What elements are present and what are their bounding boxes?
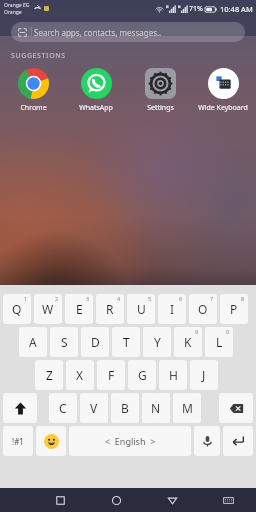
staticText: L — [216, 334, 223, 350]
staticText: F — [108, 367, 115, 383]
staticText: Chrome — [20, 103, 47, 113]
staticText: 71% — [189, 4, 203, 14]
staticText: 2 — [55, 295, 59, 302]
button[interactable]: Z — [35, 360, 63, 390]
staticText: K — [184, 334, 192, 350]
button[interactable]: E — [65, 294, 93, 324]
staticText: Orange EG — [4, 2, 30, 9]
staticText: 9 — [195, 328, 199, 335]
button[interactable]: K — [174, 327, 202, 357]
staticText: 4 — [117, 295, 121, 302]
staticText: < English > — [105, 435, 156, 447]
button[interactable]: F — [97, 360, 125, 390]
button[interactable]: T — [112, 327, 140, 357]
staticText: H — [169, 367, 178, 383]
staticText: Wide Keyboard — [198, 103, 248, 113]
staticText: 8 — [241, 295, 245, 302]
button[interactable]: L — [205, 327, 233, 357]
staticText: 1 — [24, 295, 28, 302]
button[interactable]: G — [128, 360, 156, 390]
button[interactable]: U — [127, 294, 155, 324]
button[interactable]: Back — [160, 488, 184, 512]
button[interactable]: S — [50, 327, 78, 357]
button[interactable]: WhatsApp — [66, 67, 126, 114]
staticText: E — [76, 301, 83, 317]
staticText: WhatsApp — [79, 103, 113, 113]
button[interactable]: Chrome — [3, 67, 63, 114]
button[interactable]: I — [158, 294, 186, 324]
staticText: R — [106, 301, 114, 317]
button[interactable]: !#1 — [3, 426, 33, 456]
button[interactable]: P — [220, 294, 248, 324]
button[interactable]: V — [80, 393, 108, 423]
staticText: N — [151, 400, 161, 416]
button[interactable]: < English > — [69, 426, 191, 456]
staticText: 0 — [226, 328, 230, 335]
button[interactable]: D — [81, 327, 109, 357]
staticText: !#1 — [12, 436, 24, 447]
staticText: S — [61, 334, 68, 350]
staticText: Q — [12, 301, 22, 317]
staticText: M — [182, 400, 193, 416]
staticText: 5 — [148, 295, 152, 302]
button[interactable]: R — [96, 294, 124, 324]
staticText: Settings — [147, 103, 174, 113]
staticText: O — [198, 301, 208, 317]
staticText: 6 — [179, 295, 183, 302]
staticText: 3 — [86, 295, 90, 302]
staticText: Search apps, contacts, messages.. — [34, 27, 162, 38]
button[interactable]: Backspace — [219, 393, 253, 423]
button[interactable]: H — [159, 360, 187, 390]
staticText: X — [76, 367, 84, 383]
staticText: Orange — [4, 9, 22, 16]
staticText: Z — [46, 367, 53, 383]
button[interactable]: Wide Keyboard — [193, 67, 253, 114]
staticText: 7 — [210, 295, 214, 302]
button[interactable]: Settings — [130, 67, 190, 114]
other: Scan — [18, 28, 27, 37]
staticText: T — [123, 334, 130, 350]
button[interactable]: Emoji — [36, 426, 66, 456]
button[interactable]: B — [111, 393, 139, 423]
staticText: I — [170, 301, 175, 317]
button[interactable]: Enter — [223, 426, 253, 456]
staticText: J — [202, 367, 206, 383]
button[interactable]: Q — [3, 294, 31, 324]
staticText: SUGGESTIONS — [11, 51, 66, 61]
staticText: Y — [154, 334, 161, 350]
staticText: G — [138, 367, 147, 383]
button[interactable]: Home — [104, 488, 128, 512]
button[interactable]: C — [49, 393, 77, 423]
button[interactable]: J — [190, 360, 218, 390]
staticText: D — [91, 334, 100, 350]
staticText: 10:48 AM — [220, 4, 253, 14]
button[interactable]: A — [19, 327, 47, 357]
button[interactable]: O — [189, 294, 217, 324]
button[interactable]: Voice input — [194, 426, 220, 456]
staticText: U — [137, 301, 146, 317]
button[interactable]: Y — [143, 327, 171, 357]
button[interactable]: Recents — [48, 488, 72, 512]
button[interactable]: Switch keyboard — [216, 488, 240, 512]
button[interactable]: W — [34, 294, 62, 324]
button[interactable]: Shift — [3, 393, 37, 423]
button[interactable]: N — [142, 393, 170, 423]
staticText: P — [230, 301, 238, 317]
staticText: B — [121, 400, 129, 416]
staticText: W — [42, 301, 54, 317]
staticText: C — [59, 400, 67, 416]
staticText: A — [29, 334, 37, 350]
button[interactable]: Scan — [11, 22, 245, 42]
button[interactable]: X — [66, 360, 94, 390]
button[interactable]: M — [173, 393, 201, 423]
staticText: V — [90, 400, 98, 416]
